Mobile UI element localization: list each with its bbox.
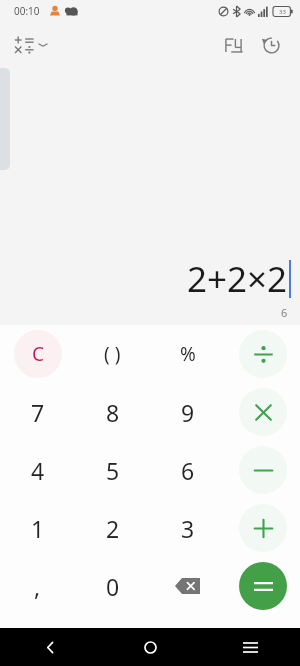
button[interactable]: Recent apps <box>200 628 300 666</box>
button[interactable]: C <box>0 325 75 383</box>
button[interactable]: History <box>252 26 290 64</box>
staticText: 0 <box>106 571 120 602</box>
staticText: 6 <box>181 455 195 486</box>
staticText: 4 <box>31 455 45 486</box>
staticText: , <box>34 571 41 602</box>
button[interactable]: 9 <box>150 383 225 441</box>
staticText: 2 <box>106 513 120 544</box>
button[interactable]: Equals <box>225 557 300 615</box>
button[interactable]: Back <box>0 628 100 666</box>
button[interactable]: 1 <box>0 499 75 557</box>
staticText: 6 <box>281 305 288 320</box>
staticText: 7 <box>31 397 45 428</box>
button[interactable]: , <box>0 557 75 615</box>
staticText: 00:10 <box>14 4 40 18</box>
button[interactable]: 8 <box>75 383 150 441</box>
button[interactable]: Backspace <box>150 557 225 615</box>
button[interactable]: Plus <box>225 499 300 557</box>
staticText: 5 <box>106 455 120 486</box>
button[interactable]: 2 <box>75 499 150 557</box>
button[interactable]: ( ) <box>75 325 150 383</box>
staticText: C <box>32 341 45 367</box>
staticText: 33 <box>279 8 286 16</box>
button[interactable]: % <box>150 325 225 383</box>
button[interactable]: 3 <box>150 499 225 557</box>
staticText: 9 <box>181 397 195 428</box>
button[interactable]: Functions <box>214 26 252 64</box>
button[interactable]: 5 <box>75 441 150 499</box>
button[interactable]: 7 <box>0 383 75 441</box>
button[interactable]: Home <box>100 628 200 666</box>
button[interactable]: 6 <box>150 441 225 499</box>
button[interactable]: 4 <box>0 441 75 499</box>
staticText: 2+2×2 <box>187 255 288 303</box>
staticText: ( ) <box>104 341 121 367</box>
button[interactable]: Multiply <box>225 383 300 441</box>
staticText: 8 <box>106 397 120 428</box>
button[interactable]: 0 <box>75 557 150 615</box>
button[interactable]: Minus <box>225 441 300 499</box>
staticText: 1 <box>31 513 45 544</box>
button[interactable]: Divide <box>225 325 300 383</box>
staticText: 3 <box>181 513 195 544</box>
button[interactable]: Calculator mode <box>10 31 52 59</box>
staticText: % <box>180 341 196 367</box>
